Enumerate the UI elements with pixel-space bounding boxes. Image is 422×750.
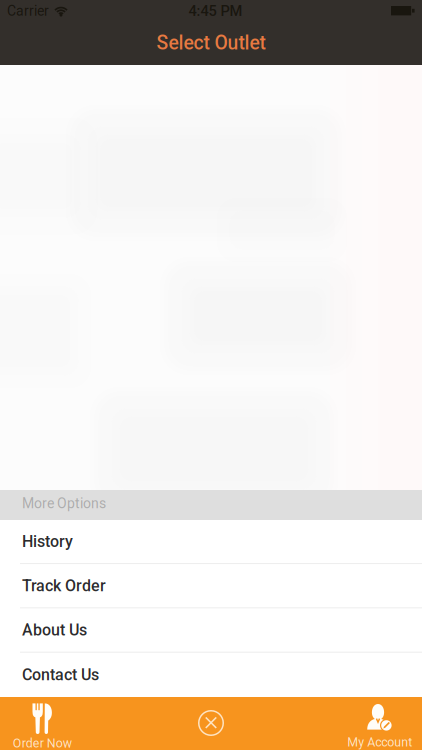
staticText: Select Outlet [156,32,265,54]
staticText: Contact Us [22,665,99,684]
button[interactable]: About Us [0,608,422,653]
staticText: Track Order [22,576,106,595]
button[interactable]: Contact Us [0,653,422,697]
button[interactable]: Order Now [0,697,84,750]
staticText: About Us [22,621,87,640]
staticText: Order Now [13,736,72,750]
staticText: History [22,532,73,551]
staticText: 4:45 PM [188,2,242,20]
button[interactable]: History [0,520,422,564]
staticText: More Options [22,495,106,512]
button[interactable]: My Account [338,697,422,750]
staticText: My Account [347,735,412,749]
button[interactable]: Close [169,697,253,750]
staticText: Carrier [7,3,49,19]
button[interactable]: Track Order [0,564,422,608]
